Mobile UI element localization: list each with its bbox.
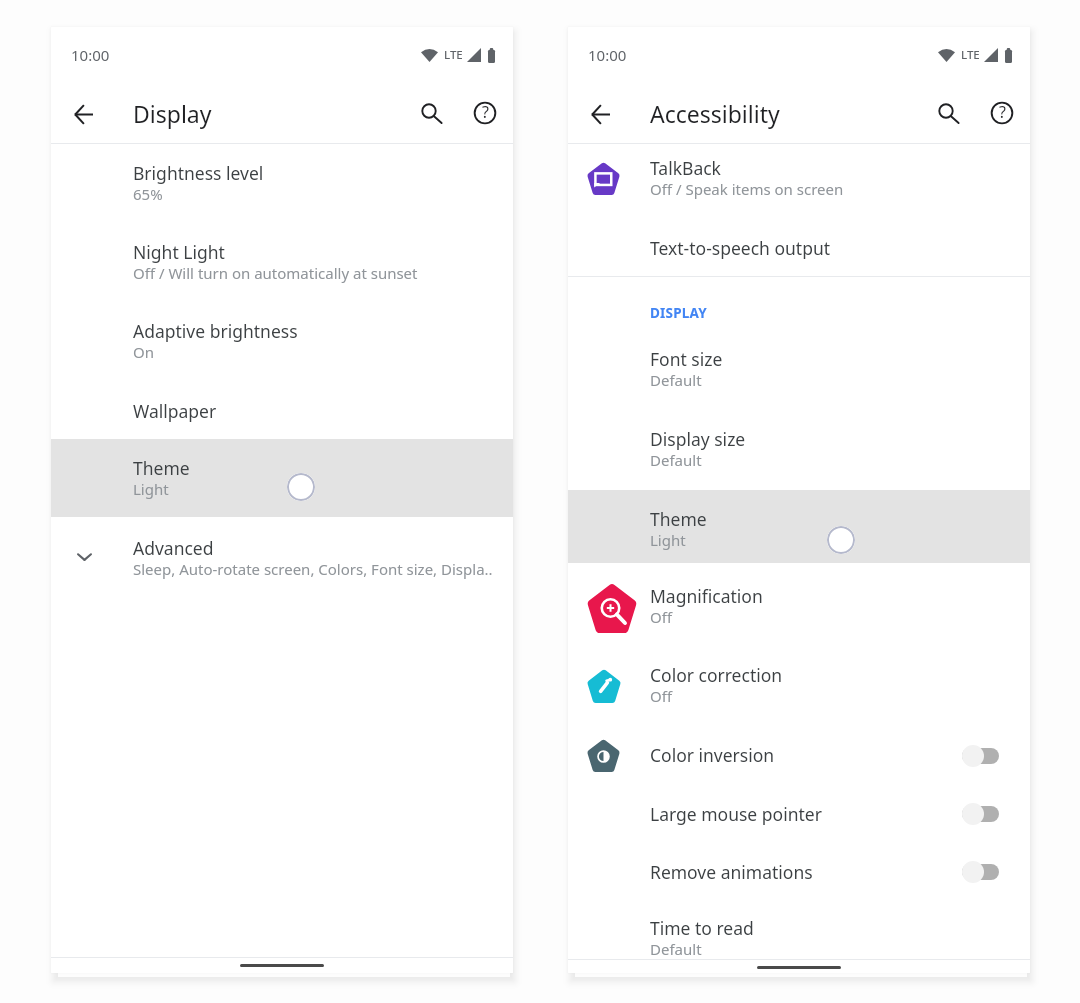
staticText: Off / Will turn on automatically at suns… [133, 263, 418, 283]
button[interactable]: Font size [568, 333, 1030, 413]
button[interactable]: Color correction [568, 642, 1030, 721]
button[interactable]: Night Light [51, 223, 513, 302]
button[interactable]: Time to read [568, 899, 1030, 959]
button[interactable]: Display size [568, 413, 1030, 490]
button[interactable]: Toggle off [962, 744, 999, 768]
staticText: Off / Speak items on screen [650, 179, 844, 199]
staticText: Color inversion [650, 743, 775, 767]
staticText: LTE [444, 47, 463, 63]
staticText: Default [650, 370, 702, 390]
button[interactable]: Theme [568, 490, 1030, 563]
button[interactable]: Wallpaper [51, 381, 513, 439]
staticText: Off [650, 607, 673, 627]
staticText: DISPLAY [650, 304, 707, 322]
staticText: ? [999, 101, 1006, 123]
staticText: TalkBack [650, 156, 721, 180]
staticText: Adaptive brightness [133, 319, 298, 343]
staticText: Light [133, 479, 169, 499]
staticText: Accessibility [650, 98, 780, 129]
staticText: Magnification [650, 584, 763, 608]
staticText: 10:00 [588, 45, 627, 65]
button[interactable]: Theme colour [827, 526, 855, 554]
button[interactable]: Brightness level [51, 144, 513, 223]
staticText: Default [650, 939, 702, 959]
staticText: Large mouse pointer [650, 802, 822, 826]
button[interactable]: Back [576, 90, 624, 138]
staticText: Wallpaper [133, 399, 217, 423]
button[interactable]: Help [463, 91, 507, 135]
button[interactable]: TalkBack [568, 144, 1030, 224]
staticText: Default [650, 450, 702, 470]
staticText: Display [133, 98, 212, 129]
button[interactable]: Color inversion [568, 721, 1030, 782]
staticText: ? [482, 101, 489, 123]
staticText: 65% [133, 184, 163, 204]
staticText: Sleep, Auto-rotate screen, Colors, Font … [133, 559, 493, 579]
button[interactable]: Back [59, 90, 107, 138]
button[interactable]: Toggle off [962, 802, 999, 826]
staticText: Remove animations [650, 860, 813, 884]
staticText: Night Light [133, 240, 225, 264]
staticText: 10:00 [71, 45, 110, 65]
staticText: LTE [961, 47, 980, 63]
button[interactable]: Help [980, 91, 1024, 135]
button[interactable]: Advanced [51, 517, 513, 593]
button[interactable]: Theme [51, 439, 513, 517]
staticText: Font size [650, 347, 723, 371]
button[interactable]: Search [410, 91, 454, 135]
staticText: Text-to-speech output [650, 236, 831, 260]
button[interactable]: Theme colour [287, 473, 315, 501]
button[interactable]: Toggle off [962, 860, 999, 884]
staticText: Display size [650, 427, 746, 451]
staticText: Color correction [650, 663, 783, 687]
button[interactable]: Remove animations [568, 841, 1030, 899]
staticText: Advanced [133, 536, 214, 560]
staticText: Theme [650, 507, 707, 531]
staticText: Theme [133, 456, 190, 480]
staticText: On [133, 342, 154, 362]
button[interactable]: Adaptive brightness [51, 302, 513, 381]
button[interactable]: Search [927, 91, 971, 135]
button[interactable]: Text-to-speech output [568, 224, 1030, 276]
button[interactable]: Magnification [568, 563, 1030, 642]
button[interactable]: Large mouse pointer [568, 782, 1030, 841]
staticText: Off [650, 686, 673, 706]
staticText: Light [650, 530, 686, 550]
staticText: Brightness level [133, 161, 264, 185]
staticText: Time to read [650, 916, 754, 940]
